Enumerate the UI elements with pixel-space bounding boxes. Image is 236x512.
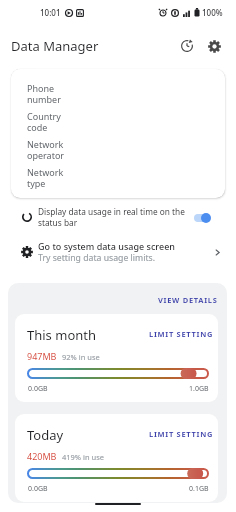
button[interactable]: VIEW DETAILS: [149, 290, 227, 310]
staticText: 10:01: [40, 7, 61, 18]
staticText: 0.0GB: [28, 384, 48, 394]
button[interactable]: LIMIT SETTING: [145, 425, 218, 443]
staticText: 1.0GB: [189, 384, 209, 394]
staticText: 0.1GB: [189, 484, 209, 494]
staticText: Data Manager: [11, 37, 99, 55]
staticText: This month: [27, 326, 97, 344]
staticText: Display data usage in real time on the s…: [38, 206, 189, 228]
staticText: 947MB: [27, 350, 57, 362]
staticText: Network operator: [27, 138, 65, 162]
staticText: VIEW DETAILS: [158, 295, 218, 305]
button[interactable]: LIMIT SETTING: [145, 325, 218, 343]
button[interactable]: Usage history: [176, 35, 198, 57]
staticText: 420MB: [27, 450, 57, 462]
staticText: Phone number: [27, 82, 61, 106]
staticText: Country code: [27, 110, 61, 134]
staticText: 92% in use: [62, 352, 100, 362]
staticText: Network type: [27, 166, 64, 190]
staticText: Go to system data usage screen: [38, 240, 175, 252]
staticText: 100%: [202, 7, 223, 18]
button[interactable]: Display data usage in real time on the s…: [0, 200, 236, 234]
staticText: Today: [27, 426, 64, 444]
staticText: Try setting data usage limits.: [38, 252, 156, 264]
staticText: 0.0GB: [28, 484, 48, 494]
button[interactable]: Go to system data usage screen: [0, 236, 236, 268]
button[interactable]: Settings: [203, 35, 225, 57]
staticText: LIMIT SETTING: [149, 429, 214, 439]
staticText: 419% in use: [62, 452, 105, 462]
staticText: LIMIT SETTING: [149, 329, 214, 339]
